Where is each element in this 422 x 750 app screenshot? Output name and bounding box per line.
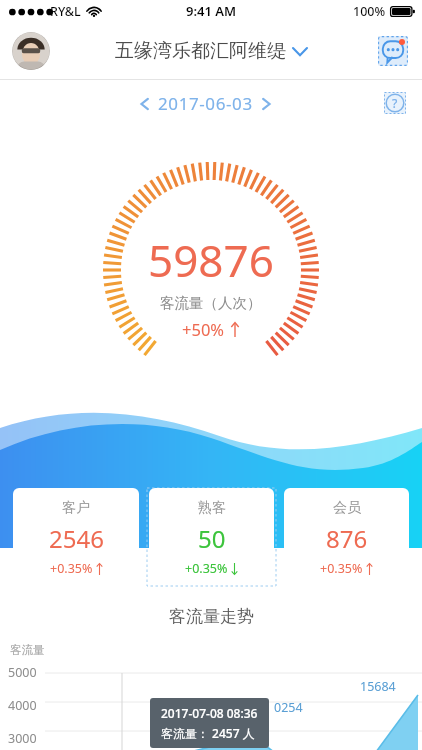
staticText: 876	[326, 522, 368, 555]
button[interactable]: Messages	[378, 36, 408, 66]
staticText: 50	[198, 522, 226, 555]
staticText: 熟客	[198, 499, 226, 517]
staticText: 3000	[8, 730, 37, 747]
staticText: 0254	[274, 699, 303, 716]
staticText: 5000	[8, 664, 37, 681]
staticText: 客流量	[10, 643, 45, 657]
button[interactable]: 客户	[13, 488, 139, 580]
staticText: 会员	[333, 499, 361, 517]
button[interactable]: Next day	[255, 93, 277, 115]
staticText: 客户	[62, 499, 90, 517]
button[interactable]: 熟客	[149, 488, 274, 580]
staticText: +50%	[182, 318, 225, 340]
button[interactable]: 会员	[284, 488, 409, 580]
staticText: 客流量（人次）	[160, 294, 262, 312]
staticText: 2017-06-03	[158, 92, 253, 115]
button[interactable]: 五缘湾乐都汇阿维缇	[115, 39, 307, 63]
staticText: +0.35%	[50, 560, 93, 577]
button[interactable]: Profile	[12, 32, 50, 70]
staticText: RY&L	[50, 3, 81, 20]
staticText: 15684	[360, 678, 396, 695]
staticText: 2017-07-08 08:36	[161, 705, 258, 721]
staticText: 100%	[353, 3, 386, 20]
button[interactable]: Help	[384, 92, 406, 114]
staticText: 2546	[49, 522, 104, 555]
staticText: +0.35%	[185, 560, 228, 577]
button[interactable]: Previous day	[134, 93, 156, 115]
staticText: 五缘湾乐都汇阿维缇	[115, 39, 286, 63]
staticText: +0.35%	[320, 560, 363, 577]
staticText: ?	[392, 95, 398, 111]
staticText: 9:41 AM	[186, 2, 237, 20]
staticText: 4000	[8, 697, 37, 714]
staticText: 客流量走势	[169, 606, 254, 627]
staticText: 客流量： 2457 人	[161, 725, 255, 741]
staticText: 59876	[148, 230, 274, 290]
